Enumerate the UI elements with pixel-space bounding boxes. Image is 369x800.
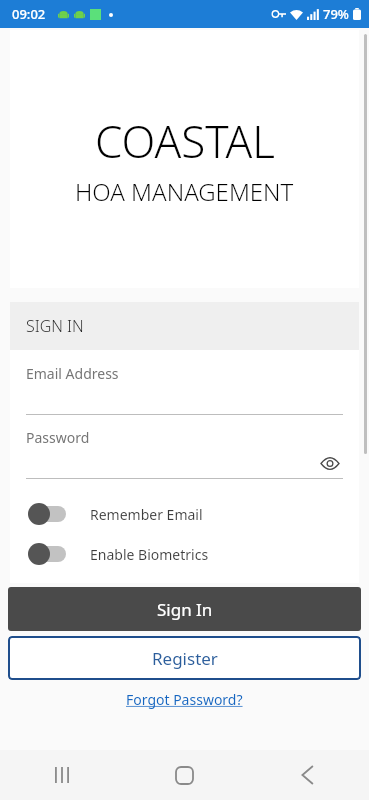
staticText: Enable Biometrics bbox=[90, 545, 209, 564]
button[interactable]: Password bbox=[26, 428, 343, 479]
button[interactable]: Email Address bbox=[26, 364, 343, 415]
button[interactable]: Sign In bbox=[8, 587, 361, 631]
staticText: Register bbox=[152, 647, 218, 670]
button[interactable]: Home bbox=[123, 750, 246, 800]
staticText: Remember Email bbox=[90, 505, 203, 524]
button[interactable]: Forgot Password? bbox=[120, 688, 249, 711]
button[interactable]: Back bbox=[246, 750, 369, 800]
staticText: SIGN IN bbox=[26, 315, 84, 337]
button[interactable]: Remember Email bbox=[26, 501, 343, 527]
button[interactable]: Recent apps bbox=[0, 750, 123, 800]
button[interactable]: Register bbox=[8, 636, 361, 680]
staticText: 09:02 bbox=[12, 5, 46, 23]
button[interactable]: Show password bbox=[319, 452, 341, 474]
staticText: HOA MANAGEMENT bbox=[75, 175, 294, 208]
staticText: COASTAL bbox=[95, 111, 275, 171]
staticText: Forgot Password? bbox=[126, 690, 243, 709]
staticText: Email Address bbox=[26, 364, 119, 383]
staticText: Sign In bbox=[157, 598, 213, 621]
staticText: 79% bbox=[323, 5, 349, 23]
button[interactable]: Enable Biometrics bbox=[26, 541, 343, 567]
staticText: Password bbox=[26, 428, 90, 447]
